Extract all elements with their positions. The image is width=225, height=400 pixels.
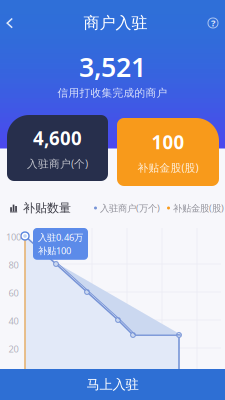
staticText: 补贴金股(股) (137, 160, 198, 174)
staticText: 100 (151, 129, 184, 154)
staticText: 入驻商户(个) (27, 156, 88, 170)
staticText: ? (211, 17, 215, 29)
staticText: 60 (8, 287, 18, 299)
button[interactable]: 马上入驻 (0, 369, 225, 400)
staticText: 补贴100 (38, 244, 71, 257)
staticText: 4,600 (33, 125, 82, 150)
staticText: 80 (8, 259, 18, 271)
staticText: 20 (8, 343, 18, 355)
staticText: 信用打收集完成的商户 (57, 86, 167, 99)
button[interactable]: Help (207, 10, 225, 36)
staticText: 100 (6, 231, 21, 243)
staticText: 补贴金股(股) (173, 202, 224, 214)
staticText: 商户入驻 (83, 13, 147, 33)
staticText: 入驻商户(万个) (100, 202, 160, 214)
button[interactable]: Back (0, 10, 24, 35)
staticText: 马上入驻 (86, 376, 138, 393)
staticText: 补贴数量 (23, 201, 71, 215)
staticText: 40 (8, 315, 18, 327)
staticText: 3,521 (79, 49, 146, 84)
staticText: 入驻0.46万 (38, 231, 83, 243)
